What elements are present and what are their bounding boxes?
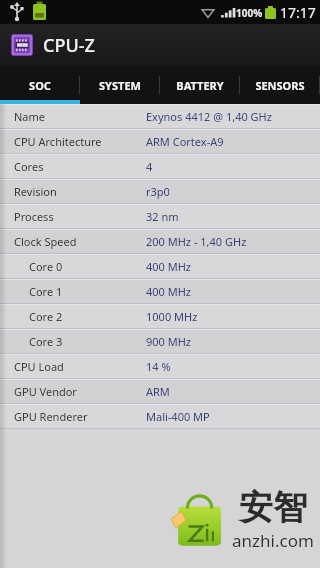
button[interactable]: Core 1 bbox=[0, 279, 320, 304]
staticText: Mali-400 MP bbox=[146, 409, 210, 424]
staticText: Name bbox=[14, 109, 320, 124]
button[interactable]: Core 0 bbox=[0, 254, 320, 279]
staticText: Revision bbox=[14, 184, 320, 199]
button[interactable]: GPU Vendor bbox=[0, 379, 320, 404]
button[interactable]: SYSTEM bbox=[80, 66, 160, 104]
staticText: 400 MHz bbox=[146, 284, 192, 299]
staticText: 200 MHz - 1,40 GHz bbox=[146, 234, 247, 249]
staticText: GPU Renderer bbox=[14, 409, 320, 424]
staticText: Core 0 bbox=[29, 259, 320, 274]
staticText: Clock Speed bbox=[14, 234, 320, 249]
button[interactable]: CPU Architecture bbox=[0, 129, 320, 154]
staticText: SENSORS bbox=[255, 78, 305, 93]
staticText: 1000 MHz bbox=[146, 309, 198, 324]
staticText: SYSTEM bbox=[99, 78, 141, 93]
staticText: Core 3 bbox=[29, 334, 320, 349]
button[interactable]: SENSORS bbox=[240, 66, 320, 104]
staticText: 安智 bbox=[239, 486, 307, 529]
staticText: 100% bbox=[236, 6, 263, 20]
button[interactable]: Core 2 bbox=[0, 304, 320, 329]
button[interactable]: Cores bbox=[0, 154, 320, 179]
staticText: 32 nm bbox=[146, 209, 179, 224]
staticText: Process bbox=[14, 209, 320, 224]
staticText: ARM Cortex-A9 bbox=[146, 134, 224, 149]
staticText: Core 2 bbox=[29, 309, 320, 324]
staticText: Core 1 bbox=[29, 284, 320, 299]
staticText: ARM bbox=[146, 384, 170, 399]
button[interactable]: BATTERY bbox=[160, 66, 240, 104]
button[interactable]: CPU-Z bbox=[0, 24, 320, 66]
staticText: 400 MHz bbox=[146, 259, 192, 274]
staticText: 4 bbox=[146, 159, 153, 174]
button[interactable]: SOC bbox=[0, 66, 80, 104]
button[interactable]: Core 3 bbox=[0, 329, 320, 354]
staticText: CPU Load bbox=[14, 359, 320, 374]
button[interactable]: Clock Speed bbox=[0, 229, 320, 254]
button[interactable]: CPU Load bbox=[0, 354, 320, 379]
staticText: CPU Architecture bbox=[14, 134, 320, 149]
staticText: anzhi.com bbox=[232, 529, 314, 552]
staticText: 14 % bbox=[146, 359, 171, 374]
button[interactable]: Name bbox=[0, 104, 320, 129]
staticText: r3p0 bbox=[146, 184, 170, 199]
staticText: GPU Vendor bbox=[14, 384, 320, 399]
button[interactable]: Process bbox=[0, 204, 320, 229]
button[interactable]: Revision bbox=[0, 179, 320, 204]
button[interactable]: GPU Renderer bbox=[0, 404, 320, 429]
staticText: Cores bbox=[14, 159, 320, 174]
staticText: Exynos 4412 @ 1,40 GHz bbox=[146, 109, 272, 124]
staticText: CPU-Z bbox=[43, 33, 95, 58]
staticText: 17:17 bbox=[280, 3, 316, 22]
staticText: SOC bbox=[29, 78, 51, 93]
staticText: 900 MHz bbox=[146, 334, 192, 349]
staticText: BATTERY bbox=[176, 78, 224, 93]
